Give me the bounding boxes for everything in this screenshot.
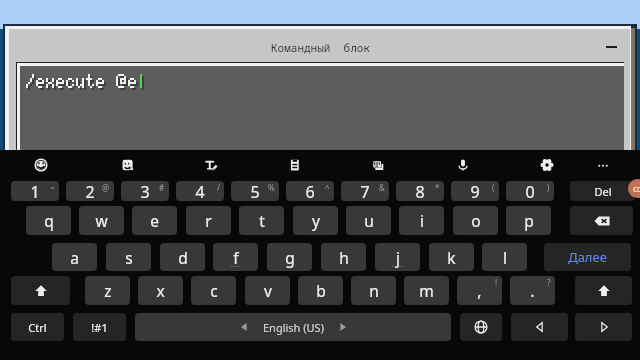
button[interactable]: .: [510, 276, 555, 305]
button[interactable]: Text edit: [194, 152, 228, 178]
button[interactable]: ,: [457, 276, 502, 305]
button[interactable]: 9: [451, 181, 499, 201]
button[interactable]: 1: [11, 181, 59, 201]
button[interactable]: p: [506, 206, 551, 235]
staticText: 6: [305, 181, 315, 201]
staticText: e: [150, 210, 159, 231]
staticText: j: [396, 247, 400, 268]
staticText: ?: [547, 277, 551, 288]
button[interactable]: Ctrl: [11, 313, 64, 341]
button[interactable]: w: [79, 206, 124, 235]
button[interactable]: 8: [396, 181, 444, 201]
button[interactable]: s: [106, 243, 151, 271]
staticText: z: [104, 280, 112, 301]
staticText: v: [264, 280, 272, 301]
staticText: ^: [325, 182, 330, 193]
button[interactable]: 4: [176, 181, 224, 201]
staticText: k: [447, 247, 456, 268]
button[interactable]: h: [321, 243, 366, 271]
button[interactable]: GIF: [361, 152, 395, 178]
button[interactable]: f: [213, 243, 258, 271]
staticText: q: [44, 210, 54, 231]
button[interactable]: e: [132, 206, 177, 235]
button[interactable]: c: [191, 276, 236, 305]
button[interactable]: g: [267, 243, 312, 271]
button[interactable]: z: [85, 276, 130, 305]
button[interactable]: Stickers: [111, 152, 145, 178]
button[interactable]: a: [52, 243, 97, 271]
button[interactable]: Emoji: [24, 152, 58, 178]
staticText: ~: [50, 182, 55, 193]
staticText: !#1: [91, 320, 108, 335]
staticText: t: [259, 210, 265, 231]
button[interactable]: l: [482, 243, 527, 271]
button[interactable]: 5: [231, 181, 279, 201]
staticText: ): [547, 182, 550, 193]
button[interactable]: x: [138, 276, 183, 305]
staticText: d: [178, 247, 188, 268]
staticText: /: [217, 182, 220, 193]
staticText: (: [492, 182, 495, 193]
button[interactable]: n: [351, 276, 396, 305]
button[interactable]: i: [399, 206, 444, 235]
staticText: o: [471, 210, 481, 231]
staticText: !: [495, 277, 498, 288]
button[interactable]: 7: [341, 181, 389, 201]
button[interactable]: d: [160, 243, 205, 271]
staticText: Командный блок: [271, 40, 370, 55]
button[interactable]: 3: [121, 181, 169, 201]
staticText: a: [70, 247, 79, 268]
staticText: Del: [594, 184, 612, 199]
button[interactable]: v: [245, 276, 290, 305]
button[interactable]: backspace: [570, 206, 633, 235]
button[interactable]: Settings: [530, 152, 564, 178]
staticText: i: [420, 210, 424, 231]
button[interactable]: right: [575, 313, 632, 341]
button[interactable]: !#1: [73, 313, 126, 341]
staticText: m: [419, 280, 434, 301]
staticText: l: [503, 247, 507, 268]
button[interactable]: o: [453, 206, 498, 235]
staticText: .: [530, 280, 535, 302]
button[interactable]: left: [511, 313, 568, 341]
button[interactable]: globe: [460, 313, 502, 341]
staticText: 7: [360, 181, 370, 201]
staticText: h: [339, 247, 349, 268]
button[interactable]: j: [375, 243, 420, 271]
button[interactable]: Minimize: [600, 38, 622, 56]
button[interactable]: Далее: [544, 243, 631, 271]
button[interactable]: English (US): [135, 313, 451, 341]
button[interactable]: u: [346, 206, 391, 235]
staticText: b: [316, 280, 326, 301]
button[interactable]: Clipboard: [278, 152, 312, 178]
staticText: n: [369, 280, 379, 301]
button[interactable]: Account: [628, 179, 640, 198]
button[interactable]: 2: [66, 181, 114, 201]
button[interactable]: 0: [506, 181, 554, 201]
staticText: 4: [195, 181, 205, 201]
button[interactable]: 6: [286, 181, 334, 201]
button[interactable]: Del: [570, 181, 635, 201]
button[interactable]: t: [239, 206, 284, 235]
staticText: ,: [477, 280, 482, 302]
staticText: @: [102, 182, 110, 193]
button[interactable]: q: [26, 206, 71, 235]
button[interactable]: m: [404, 276, 449, 305]
button[interactable]: y: [293, 206, 338, 235]
staticText: w: [95, 210, 108, 231]
staticText: 0: [525, 181, 535, 201]
button[interactable]: b: [298, 276, 343, 305]
button[interactable]: shift: [11, 276, 70, 305]
staticText: 9: [470, 181, 480, 201]
staticText: f: [233, 247, 239, 268]
button[interactable]: k: [429, 243, 474, 271]
button[interactable]: Voice input: [446, 152, 480, 178]
button[interactable]: shift: [575, 276, 632, 305]
staticText: 1: [30, 181, 40, 201]
staticText: u: [364, 210, 374, 231]
staticText: %: [268, 182, 275, 193]
staticText: g: [285, 247, 295, 268]
button[interactable]: r: [186, 206, 231, 235]
button[interactable]: More options: [586, 152, 620, 178]
staticText: 5: [250, 181, 260, 201]
